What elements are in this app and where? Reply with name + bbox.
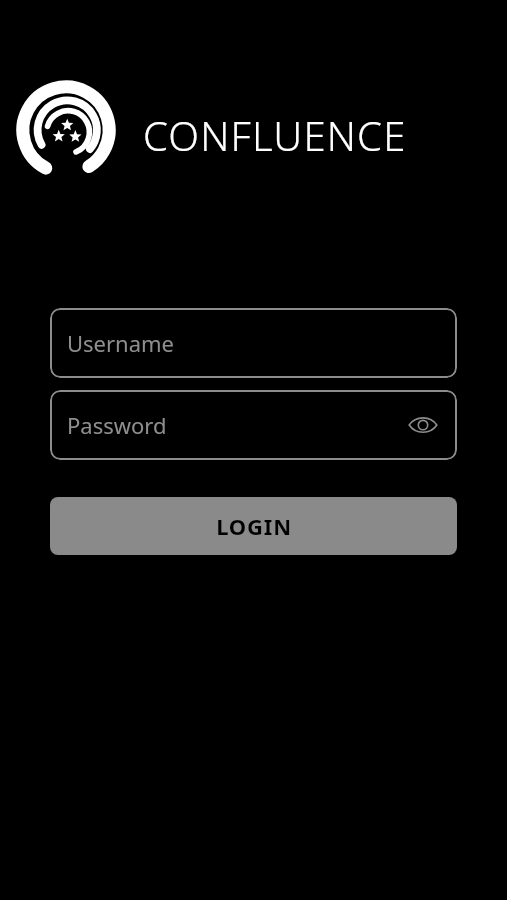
staticText: Password [67, 410, 167, 440]
staticText: Username [67, 328, 175, 358]
staticText: LOGIN [216, 511, 292, 541]
button[interactable]: Password [50, 390, 457, 460]
staticText: CONFLUENCE [143, 108, 407, 162]
button[interactable]: Show password [401, 403, 445, 447]
button[interactable]: Username [50, 308, 457, 378]
button[interactable]: LOGIN [50, 497, 457, 555]
